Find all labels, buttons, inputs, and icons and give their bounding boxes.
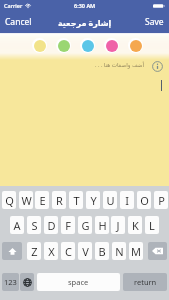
staticText: space [68, 277, 89, 287]
button[interactable]: K [128, 216, 142, 234]
staticText: X [48, 244, 55, 259]
button[interactable]: Numbers [2, 273, 19, 291]
button[interactable]: S [27, 216, 41, 234]
staticText: E [39, 193, 46, 208]
staticText: return [134, 277, 157, 287]
staticText: I [125, 193, 129, 208]
staticText: M [131, 244, 141, 259]
button[interactable]: Shift [2, 242, 22, 260]
button[interactable]: U [103, 191, 117, 209]
button[interactable]: M [129, 242, 143, 260]
staticText: Y [90, 193, 97, 208]
button[interactable]: Save [139, 12, 169, 32]
staticText: A [13, 218, 21, 233]
button[interactable]: W [19, 191, 33, 209]
button[interactable]: B [95, 242, 109, 260]
button[interactable]: N [112, 242, 126, 260]
staticText: P [158, 193, 165, 208]
staticText: W [21, 193, 32, 208]
staticText: C [65, 244, 72, 259]
staticText: K [132, 218, 139, 233]
button[interactable]: V [78, 242, 92, 260]
button[interactable]: Q [2, 191, 16, 209]
staticText: 123 [4, 277, 17, 287]
button[interactable]: Next keyboard [20, 273, 34, 291]
button[interactable]: R [52, 191, 66, 209]
button[interactable]: C [61, 242, 75, 260]
button[interactable]: Cancel [0, 12, 38, 32]
button[interactable]: Y [86, 191, 100, 209]
staticText: أضف واصفات هنا . . . [94, 61, 144, 69]
staticText: L [149, 218, 155, 233]
staticText: O [140, 193, 149, 208]
button[interactable]: G [78, 216, 92, 234]
staticText: Q [5, 193, 14, 208]
staticText: Cancel [5, 16, 32, 28]
button[interactable]: X [44, 242, 58, 260]
button[interactable]: Info [152, 61, 163, 72]
button[interactable]: D [44, 216, 58, 234]
button[interactable]: Colour swatch [56, 38, 71, 53]
staticText: D [47, 218, 56, 233]
button[interactable]: L [145, 216, 159, 234]
button[interactable]: return [123, 273, 167, 291]
button[interactable]: Colour swatch [32, 38, 47, 53]
button[interactable]: Colour swatch [128, 38, 143, 53]
button[interactable]: F [61, 216, 75, 234]
staticText: S [31, 218, 38, 233]
staticText: H [98, 218, 107, 233]
staticText: F [65, 218, 71, 233]
staticText: T [73, 193, 80, 208]
staticText: J [116, 218, 120, 233]
button[interactable]: Colour swatch [104, 38, 119, 53]
button[interactable]: Colour swatch [80, 38, 95, 53]
button[interactable]: E [35, 191, 49, 209]
button[interactable]: J [111, 216, 125, 234]
staticText: Z [31, 244, 38, 259]
button[interactable]: I [120, 191, 134, 209]
staticText: G [81, 218, 90, 233]
button[interactable]: Z [27, 242, 41, 260]
staticText: B [98, 244, 106, 259]
staticText: U [106, 193, 115, 208]
staticText: V [82, 244, 89, 259]
staticText: R [56, 193, 63, 208]
staticText: N [115, 244, 124, 259]
button[interactable]: space [37, 273, 120, 291]
staticText: Carrier [4, 2, 23, 9]
staticText: Save [145, 16, 164, 28]
staticText: إشارة مرجعية [58, 17, 112, 28]
button[interactable]: O [137, 191, 151, 209]
button[interactable]: P [154, 191, 168, 209]
button[interactable]: Backspace [148, 242, 167, 260]
button[interactable]: A [10, 216, 24, 234]
button[interactable]: H [95, 216, 109, 234]
staticText: 6:30 AM [74, 2, 96, 9]
button[interactable]: T [69, 191, 83, 209]
